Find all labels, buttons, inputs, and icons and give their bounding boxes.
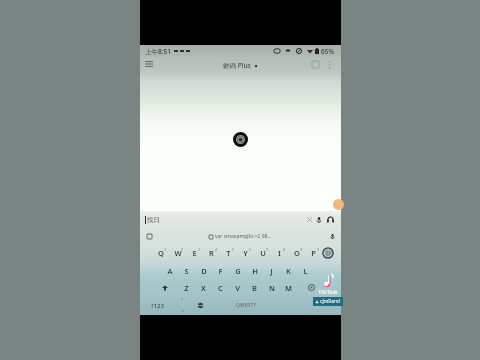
button[interactable]: Backspace — [297, 279, 341, 296]
staticText: B — [252, 283, 257, 293]
button[interactable]: Menu — [140, 57, 157, 71]
staticText: , — [182, 304, 184, 314]
staticText: M — [285, 283, 292, 293]
button[interactable]: A — [161, 262, 178, 279]
button[interactable]: G — [229, 262, 246, 279]
button[interactable]: Headphones — [324, 211, 337, 228]
button[interactable]: P — [305, 244, 322, 262]
button[interactable]: M — [280, 279, 297, 296]
button[interactable]: ?123 — [140, 296, 174, 315]
staticText: cjm9and — [320, 298, 341, 305]
staticText: V — [235, 283, 240, 293]
staticText: H — [252, 266, 258, 276]
staticText: TikTok — [318, 288, 338, 296]
button[interactable]: D — [195, 262, 212, 279]
button[interactable]: V — [229, 279, 246, 296]
button[interactable]: Assistant — [333, 199, 344, 210]
staticText: 4 — [215, 247, 218, 252]
button[interactable]: Change keyboard — [191, 296, 210, 315]
button[interactable]: Enter — [283, 296, 341, 315]
button[interactable]: QWERTY — [210, 296, 283, 315]
button[interactable]: J — [263, 262, 280, 279]
staticText: 0 — [317, 247, 320, 252]
staticText: U — [260, 248, 266, 258]
staticText: ° — [181, 297, 184, 304]
staticText: C — [218, 283, 223, 293]
staticText: 5 — [232, 247, 235, 252]
staticText: R — [209, 248, 214, 258]
button[interactable]: S — [178, 262, 195, 279]
button[interactable]: Y — [237, 244, 254, 262]
staticText: P — [311, 248, 316, 258]
staticText: 1 — [164, 247, 167, 252]
button[interactable]: X — [195, 279, 212, 296]
button[interactable]: L — [297, 262, 314, 279]
button[interactable]: Z — [178, 279, 195, 296]
staticText: ?123 — [151, 302, 164, 310]
button[interactable]: U — [254, 244, 271, 262]
staticText: E — [192, 248, 197, 258]
staticText: F — [218, 266, 223, 276]
staticText: var xmaxpmpJbi->2 98... — [215, 233, 272, 240]
staticText: O — [294, 248, 300, 258]
staticText: G — [235, 266, 241, 276]
staticText: 找日 — [147, 216, 160, 224]
staticText: 數碼 Plus — [223, 61, 251, 70]
staticText: I — [278, 248, 281, 258]
staticText: 2 — [181, 247, 184, 252]
staticText: 9 — [300, 247, 303, 252]
staticText: 6 — [249, 247, 252, 252]
button[interactable]: 找日 — [145, 211, 305, 228]
staticText: 8 — [283, 247, 286, 252]
button[interactable]: T — [220, 244, 237, 262]
button[interactable]: O — [288, 244, 305, 262]
staticText: 7 — [266, 247, 269, 252]
staticText: L — [303, 266, 308, 276]
button[interactable]: Q — [152, 244, 169, 262]
button[interactable]: ° — [174, 296, 191, 315]
staticText: A — [167, 266, 173, 276]
button[interactable]: Voice search — [313, 211, 324, 228]
button[interactable]: Voice input — [327, 231, 337, 241]
staticText: 上午8:51 — [145, 47, 171, 56]
button[interactable]: W — [169, 244, 186, 262]
button[interactable]: K — [280, 262, 297, 279]
staticText: 3 — [198, 247, 201, 252]
staticText: 65% — [321, 47, 334, 56]
staticText: Q — [158, 248, 164, 258]
button[interactable]: H — [246, 262, 263, 279]
staticText: D — [201, 266, 207, 276]
staticText: K — [286, 266, 291, 276]
button[interactable]: Clipboard — [144, 231, 154, 241]
button[interactable]: 數碼 Plus — [223, 61, 258, 70]
staticText: QWERTY — [236, 302, 257, 309]
button[interactable]: More options — [322, 57, 336, 72]
button[interactable]: B — [246, 279, 263, 296]
button[interactable]: N — [263, 279, 280, 296]
button[interactable]: C — [212, 279, 229, 296]
staticText: S — [184, 266, 189, 276]
staticText: T — [226, 248, 231, 258]
button[interactable]: Clear — [305, 211, 313, 228]
staticText: J — [270, 266, 273, 276]
staticText: Z — [184, 283, 189, 293]
button[interactable]: I — [271, 244, 288, 262]
staticText: Y — [243, 248, 248, 258]
button[interactable]: Tabs — [308, 57, 322, 71]
button[interactable]: Site logo — [233, 132, 248, 147]
button[interactable]: Shift — [140, 279, 178, 296]
staticText: W — [174, 248, 182, 258]
button[interactable]: R — [203, 244, 220, 262]
staticText: N — [269, 283, 275, 293]
button[interactable]: E — [186, 244, 203, 262]
button[interactable]: F — [212, 262, 229, 279]
staticText: X — [201, 283, 206, 293]
